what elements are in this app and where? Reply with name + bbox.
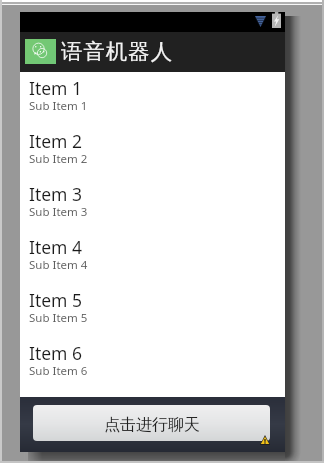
button[interactable]: Item 2 <box>20 129 285 182</box>
staticText: Item 5 <box>29 288 83 312</box>
staticText: Sub Item 4 <box>29 257 88 273</box>
staticText: Sub Item 3 <box>29 204 88 220</box>
other: Warning <box>260 435 270 445</box>
staticText: Item 6 <box>29 341 83 365</box>
staticText: Sub Item 6 <box>29 363 88 379</box>
staticText: Item 2 <box>29 129 83 153</box>
staticText: Sub Item 5 <box>29 310 88 326</box>
button[interactable]: 点击进行聊天 <box>33 405 270 441</box>
staticText: Item 3 <box>29 182 83 206</box>
staticText: Sub Item 1 <box>29 98 88 114</box>
button[interactable]: Item 3 <box>20 182 285 235</box>
staticText: 点击进行聊天 <box>104 415 200 435</box>
staticText: Item 1 <box>29 76 83 100</box>
staticText: 语音机器人 <box>61 38 173 65</box>
button[interactable]: Item 1 <box>20 76 285 129</box>
button[interactable]: Item 5 <box>20 288 285 341</box>
button[interactable]: Item 4 <box>20 235 285 288</box>
button[interactable]: App icon <box>25 39 56 64</box>
button[interactable]: Item 6 <box>20 341 285 394</box>
staticText: Sub Item 2 <box>29 151 88 167</box>
staticText: Item 4 <box>29 235 83 259</box>
